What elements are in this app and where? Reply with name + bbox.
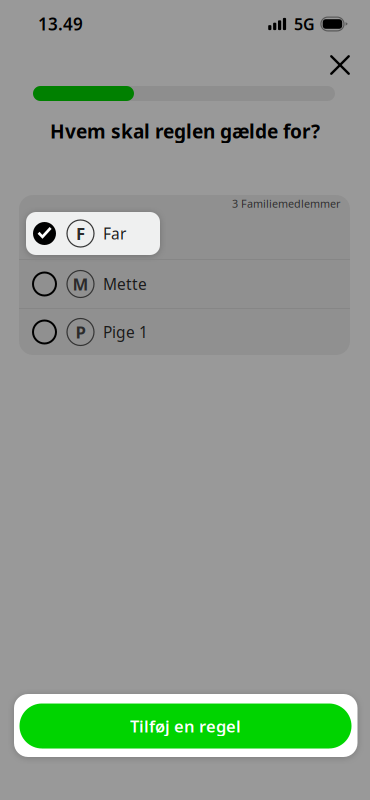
staticText: F bbox=[76, 222, 85, 245]
button[interactable]: Tilføj en regel bbox=[19, 703, 351, 748]
staticText: M bbox=[72, 273, 88, 295]
button[interactable]: P bbox=[26, 310, 357, 353]
button[interactable]: M bbox=[26, 262, 357, 305]
staticText: Far bbox=[103, 223, 126, 244]
button[interactable]: F bbox=[26, 212, 160, 255]
button[interactable]: Close bbox=[322, 48, 358, 82]
staticText: 5G bbox=[294, 13, 315, 35]
staticText: 3 Familiemedlemmer bbox=[232, 196, 340, 211]
staticText: Mette bbox=[103, 273, 147, 295]
staticText: Pige 1 bbox=[103, 321, 148, 343]
staticText: P bbox=[75, 321, 85, 343]
staticText: Tilføj en regel bbox=[130, 715, 241, 737]
staticText: Hvem skal reglen gælde for? bbox=[50, 118, 320, 144]
staticText: 13.49 bbox=[38, 12, 83, 36]
